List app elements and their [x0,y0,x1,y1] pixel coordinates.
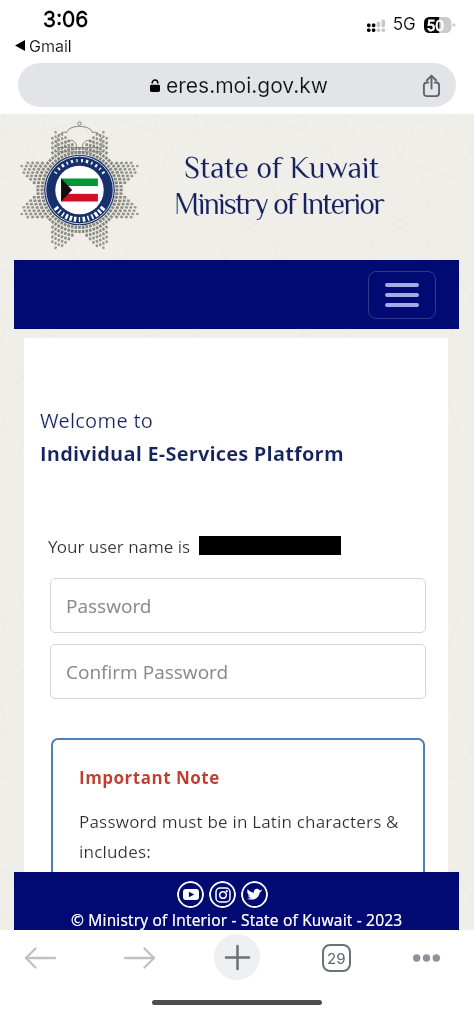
staticText: Confirm Password [66,659,229,685]
button[interactable]: New tab [214,934,260,980]
button[interactable]: Twitter [241,881,268,908]
staticText: 3:06 [43,7,89,32]
button[interactable]: Tabs [322,944,351,972]
button[interactable]: Forward [117,936,161,980]
staticText: Ministry of Interior [174,183,384,230]
button[interactable]: Share [417,71,445,99]
staticText: Password [66,593,152,619]
staticText: Individual E-Services Platform [40,440,344,467]
staticText: Important Note [79,766,220,789]
staticText: includes: [79,840,151,863]
button[interactable]: Confirm Password [50,644,426,699]
button[interactable]: More [404,938,448,978]
button[interactable]: eres.moi.gov.kw [18,63,456,107]
staticText: Your user name is [48,535,191,558]
staticText: Password must be in Latin characters & [79,810,399,833]
staticText: 29 [327,949,346,967]
staticText: Gmail [29,36,72,55]
button[interactable]: Password [50,578,426,633]
button[interactable]: Menu [368,271,436,319]
staticText: 50 [427,17,445,33]
staticText: Welcome to [40,407,154,434]
button[interactable]: YouTube [177,881,204,908]
staticText: © Ministry of Interior - State of Kuwait… [71,909,403,930]
button[interactable]: Back [18,936,62,980]
button[interactable]: Instagram [209,881,236,908]
staticText: State of Kuwait [184,147,380,194]
staticText: eres.moi.gov.kw [166,73,329,98]
staticText: 5G [393,14,416,35]
